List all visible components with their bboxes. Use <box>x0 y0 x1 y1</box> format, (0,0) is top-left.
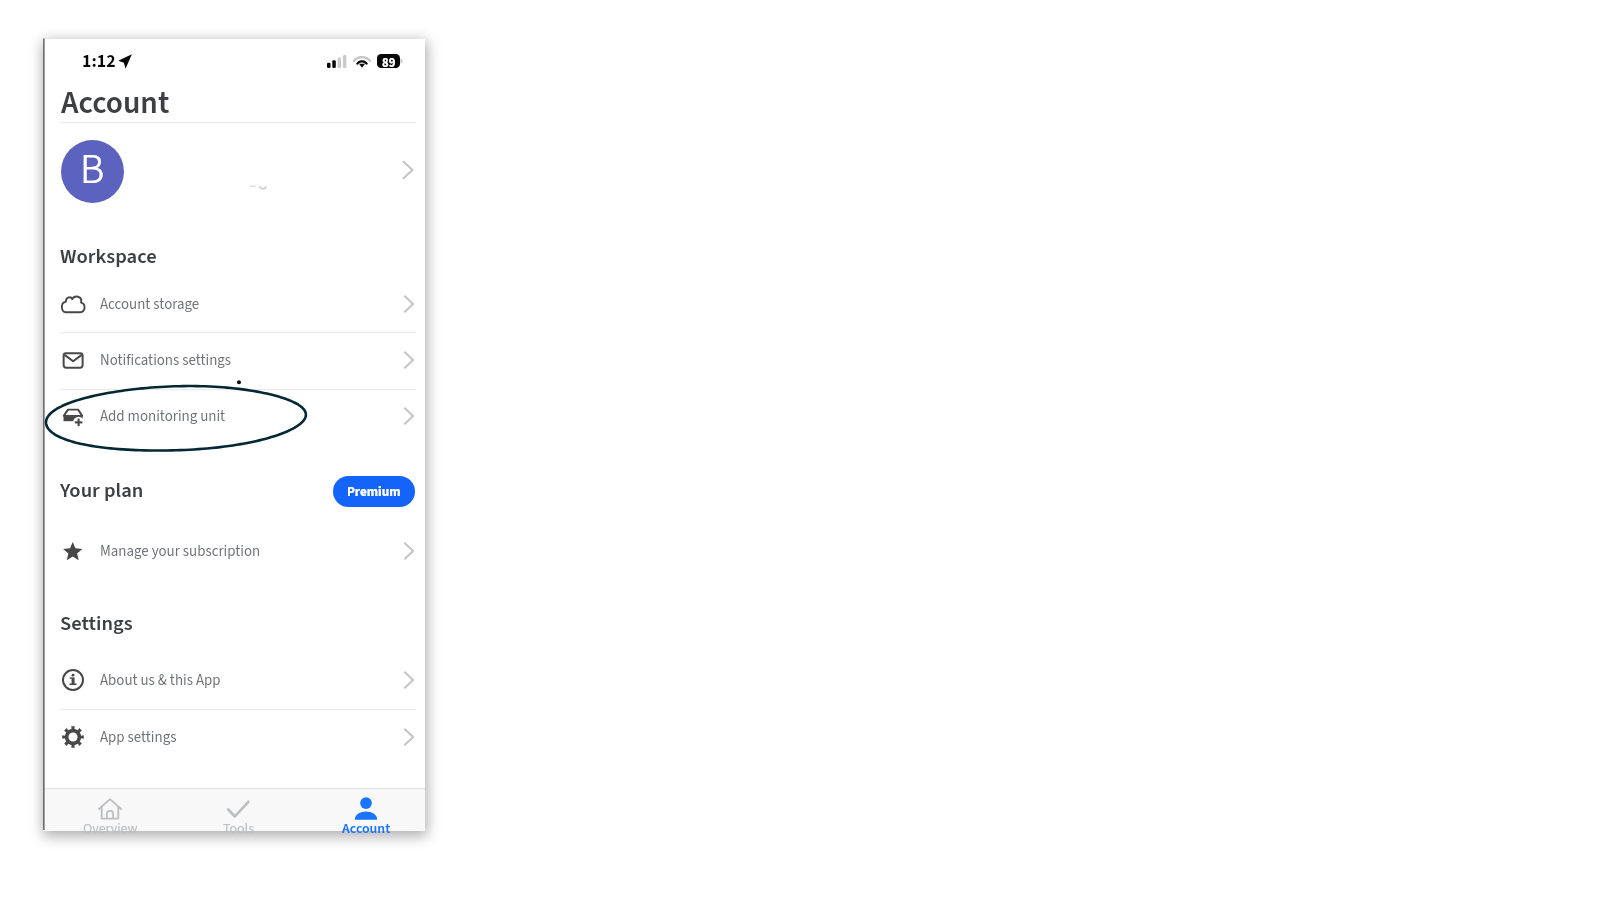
button[interactable]: Premium <box>333 476 415 507</box>
staticText: B <box>80 141 105 200</box>
button[interactable]: Tools <box>196 788 280 831</box>
button[interactable]: Manage your subscription <box>44 525 425 577</box>
staticText: Account <box>61 81 170 125</box>
staticText: Workspace <box>60 242 157 271</box>
button[interactable]: App settings <box>44 711 425 763</box>
button[interactable]: Overview <box>68 788 152 831</box>
staticText: Overview <box>83 819 138 839</box>
staticText: Tools <box>223 819 254 839</box>
staticText: Notifications settings <box>100 350 232 371</box>
button[interactable]: Add monitoring unit <box>44 390 425 442</box>
button[interactable]: Notifications settings <box>44 334 425 386</box>
staticText: Manage your subscription <box>100 541 261 562</box>
staticText: Account <box>342 819 391 839</box>
staticText: App settings <box>100 727 177 748</box>
button[interactable]: Open profile <box>44 134 425 208</box>
staticText: 1:12 <box>82 49 116 74</box>
staticText: Add monitoring unit <box>100 406 226 427</box>
button[interactable]: Account storage <box>44 278 425 330</box>
staticText: Settings <box>60 609 133 638</box>
button[interactable]: About us & this App <box>44 654 425 706</box>
staticText: About us & this App <box>100 670 221 691</box>
staticText: Premium <box>347 482 401 501</box>
staticText: Your plan <box>60 476 144 505</box>
button[interactable]: Account <box>324 788 408 831</box>
staticText: 89 <box>382 54 396 68</box>
staticText: Account storage <box>100 294 200 315</box>
